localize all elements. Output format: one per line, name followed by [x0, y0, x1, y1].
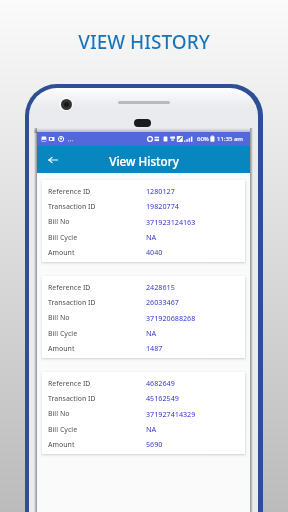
staticText: Transaction ID	[48, 202, 96, 211]
staticText: Bill No	[48, 409, 70, 418]
staticText: 1280127	[146, 186, 175, 196]
staticText: Amount	[48, 248, 75, 257]
staticText: Amount	[48, 344, 75, 353]
staticText: 60%	[197, 135, 209, 143]
staticText: 11:35 am	[217, 135, 243, 143]
staticText: 4682649	[146, 378, 175, 388]
button[interactable]: Back	[42, 149, 63, 170]
staticText: Bill No	[48, 313, 70, 322]
staticText: 26033467	[146, 297, 179, 307]
staticText: Transaction ID	[48, 394, 96, 403]
staticText: View History	[109, 153, 179, 169]
staticText: Bill Cycle	[48, 425, 78, 434]
staticText: NA	[146, 424, 157, 434]
staticText: 45162549	[146, 393, 179, 403]
staticText: Bill No	[48, 217, 70, 226]
staticText: Bill Cycle	[48, 329, 78, 338]
staticText: Reference ID	[48, 283, 91, 292]
staticText: NA	[146, 328, 157, 338]
button[interactable]: Reference ID	[42, 180, 245, 262]
staticText: Transaction ID	[48, 298, 96, 307]
staticText: NA	[146, 232, 157, 242]
staticText: 5690	[146, 439, 163, 449]
staticText: 371923124163	[146, 217, 196, 227]
staticText: Amount	[48, 440, 75, 449]
staticText: 371920688268	[146, 313, 196, 323]
staticText: Reference ID	[48, 187, 91, 196]
staticText: 371927414329	[146, 409, 196, 419]
staticText: Bill Cycle	[48, 233, 78, 242]
staticText: 1487	[146, 343, 163, 353]
staticText: 19820774	[146, 201, 179, 211]
staticText: 2428615	[146, 282, 175, 292]
staticText: VIEW HISTORY	[0, 29, 288, 55]
staticText: Reference ID	[48, 379, 91, 388]
button[interactable]: Reference ID	[42, 276, 245, 358]
staticText: 4040	[146, 247, 163, 257]
button[interactable]: Reference ID	[42, 372, 245, 454]
